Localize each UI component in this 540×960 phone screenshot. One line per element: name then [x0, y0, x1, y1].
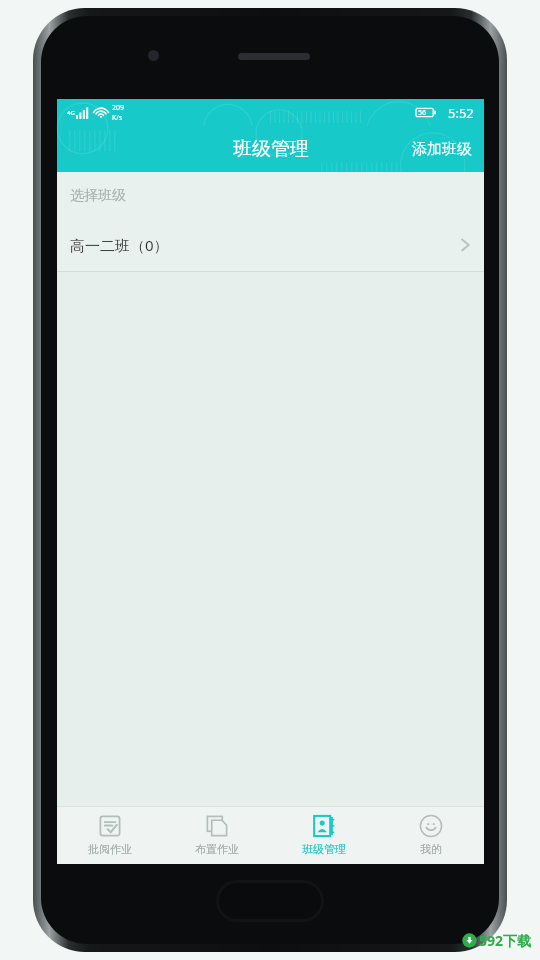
staticText: 班级管理 [302, 842, 346, 856]
button[interactable]: 添加班级 [400, 126, 484, 172]
staticText: 592下载 [479, 931, 532, 950]
button[interactable]: 布置作业 [163, 807, 270, 864]
staticText: 56 [418, 108, 427, 118]
staticText: 209 [112, 103, 125, 113]
staticText: 班级管理 [233, 137, 309, 161]
staticText: 选择班级 [70, 187, 126, 205]
staticText: 5:52 [448, 104, 474, 122]
staticText: 添加班级 [412, 140, 472, 159]
staticText: K/s [112, 113, 123, 123]
button[interactable]: 批阅作业 [57, 807, 163, 864]
button[interactable]: 我的 [377, 807, 484, 864]
button[interactable]: 高一二班（0） [57, 219, 484, 271]
button[interactable]: 班级管理 [270, 807, 377, 864]
staticText: 我的 [420, 842, 442, 856]
staticText: 批阅作业 [88, 842, 132, 856]
staticText: 高一二班（0） [70, 235, 169, 255]
staticText: 布置作业 [195, 842, 239, 856]
staticText: 4G [67, 109, 75, 117]
